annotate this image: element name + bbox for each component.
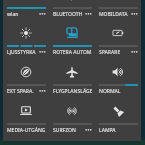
staticText: SURFZON — [53, 127, 76, 133]
staticText: LAMPA — [99, 127, 116, 133]
staticText: FLYGPLANSLÄGE — [53, 88, 92, 94]
button[interactable]: MEDIA-UTGÅNG — [3, 91, 49, 130]
button[interactable]: wlan — [3, 0, 49, 14]
staticText: MOBILDATA — [99, 11, 128, 17]
other: LJUSSTYRKA — [20, 27, 32, 39]
staticText: wlan — [7, 11, 19, 17]
other: EXT SPARA. — [20, 66, 32, 78]
button[interactable]: SURFZON — [49, 91, 95, 130]
other: SURFZON — [66, 105, 78, 117]
other: FLYGPLANSLÄGE — [66, 66, 78, 78]
button[interactable]: ROTERA AUTOM. — [49, 13, 95, 52]
button[interactable]: EXT SPARA. — [3, 52, 49, 91]
staticText: BLUETOOTH — [53, 11, 83, 17]
other: NORMAL — [112, 66, 124, 78]
staticText: ROTERA AUTOM. — [53, 49, 92, 55]
other: LAMPA — [112, 105, 124, 117]
other: ROTERA AUTOM. — [66, 27, 78, 39]
staticText: MEDIA-UTGÅNG — [7, 127, 46, 133]
staticText: LJUSSTYRKA — [7, 49, 36, 55]
other: SPARARE — [112, 27, 124, 39]
staticText: NORMAL — [99, 88, 121, 94]
button[interactable]: LAMPA — [95, 91, 141, 130]
button[interactable]: FLYGPLANSLÄGE — [49, 52, 95, 91]
button[interactable]: SPARARE — [95, 13, 141, 52]
other: BLUETOOTH — [66, 0, 78, 1]
other: MEDIA-UTGÅNG — [20, 105, 32, 117]
staticText: EXT SPARA. — [7, 88, 34, 94]
staticText: SPARARE — [99, 49, 121, 55]
button[interactable]: MOBILDATA — [95, 0, 141, 14]
button[interactable]: NORMAL — [95, 52, 141, 91]
button[interactable]: LJUSSTYRKA — [3, 13, 49, 52]
button[interactable]: BLUETOOTH — [49, 0, 95, 14]
